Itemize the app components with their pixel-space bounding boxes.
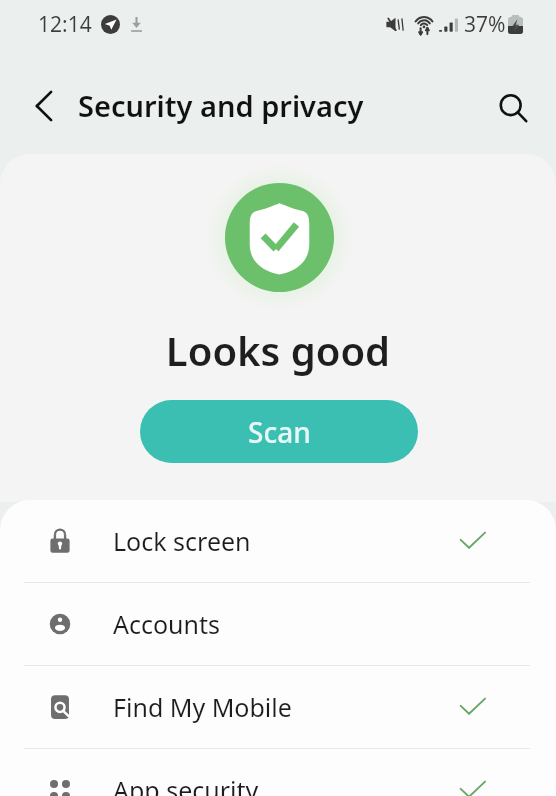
staticText: 37% [464, 10, 506, 39]
button[interactable]: Search [488, 82, 540, 134]
staticText: Lock screen [113, 524, 251, 558]
staticText: Accounts [113, 607, 221, 641]
button[interactable]: Lock screen [0, 500, 556, 582]
staticText: 12:14 [38, 10, 92, 39]
staticText: Scan [248, 413, 311, 451]
button[interactable]: Back [17, 77, 75, 135]
button[interactable]: Find My Mobile [0, 666, 556, 748]
staticText: Find My Mobile [113, 690, 292, 724]
staticText: App security [113, 773, 259, 796]
staticText: Security and privacy [78, 86, 364, 125]
button[interactable]: App security [0, 749, 556, 796]
button[interactable]: Accounts [0, 583, 556, 665]
staticText: Looks good [0, 323, 556, 377]
button[interactable]: Scan [140, 400, 418, 463]
